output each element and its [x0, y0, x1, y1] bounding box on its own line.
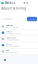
staticText: Theme and text size — [6, 39, 19, 41]
staticText: Manage — [29, 18, 35, 20]
staticText: Help — [6, 49, 9, 51]
button[interactable]: Compose — [26, 1, 28, 5]
staticText: Manage downloads — [6, 45, 20, 47]
staticText: Mailbox — [5, 1, 15, 5]
staticText: Appearance — [6, 37, 16, 39]
staticText: Contact support — [6, 52, 17, 53]
button[interactable]: Appearance — [0, 36, 38, 42]
button[interactable]: Compose message — [0, 57, 10, 63]
button[interactable]: Help — [0, 48, 38, 55]
button[interactable]: Search — [23, 1, 26, 5]
staticText: Privacy — [6, 31, 12, 32]
staticText: Alerts and badges — [6, 27, 19, 28]
staticText: Account & billing — [1, 7, 26, 10]
button[interactable]: Privacy — [0, 30, 38, 36]
staticText: Notifications — [6, 24, 14, 26]
staticText: Permissions and data — [6, 33, 21, 35]
staticText: Renews monthly — [1, 18, 12, 20]
button[interactable]: Manage — [27, 17, 37, 21]
button[interactable]: Storage — [0, 42, 38, 48]
staticText: Storage — [6, 43, 12, 45]
button[interactable]: Notifications — [0, 23, 38, 30]
